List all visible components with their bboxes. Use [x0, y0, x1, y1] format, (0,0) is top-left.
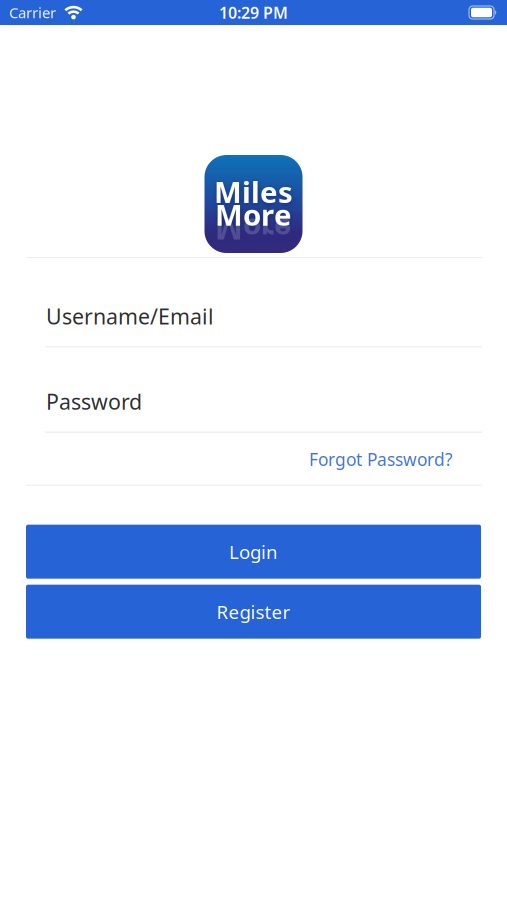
- staticText: Carrier: [9, 3, 56, 22]
- button[interactable]: Login: [26, 525, 481, 579]
- staticText: Login: [229, 539, 278, 564]
- staticText: Register: [216, 599, 290, 624]
- button[interactable]: Register: [26, 585, 481, 639]
- staticText: Forgot Password?: [309, 448, 453, 471]
- button[interactable]: Password: [0, 387, 507, 433]
- staticText: More: [215, 195, 292, 234]
- staticText: Password: [46, 387, 142, 416]
- staticText: More: [215, 210, 292, 249]
- staticText: Miles: [214, 172, 293, 211]
- staticText: Username/Email: [46, 302, 214, 330]
- staticText: 10:29 PM: [219, 2, 288, 23]
- button[interactable]: Forgot Password?: [309, 448, 453, 471]
- button[interactable]: Username/Email: [0, 302, 507, 347]
